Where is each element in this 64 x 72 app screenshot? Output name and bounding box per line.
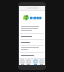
button[interactable]: Home [20, 59, 25, 65]
button[interactable]: Account [39, 59, 44, 65]
button[interactable] [19, 53, 45, 58]
button[interactable]: Claims [33, 59, 38, 65]
button[interactable]: Coverage [26, 59, 31, 65]
button[interactable] [19, 34, 45, 39]
button[interactable] [19, 40, 45, 45]
